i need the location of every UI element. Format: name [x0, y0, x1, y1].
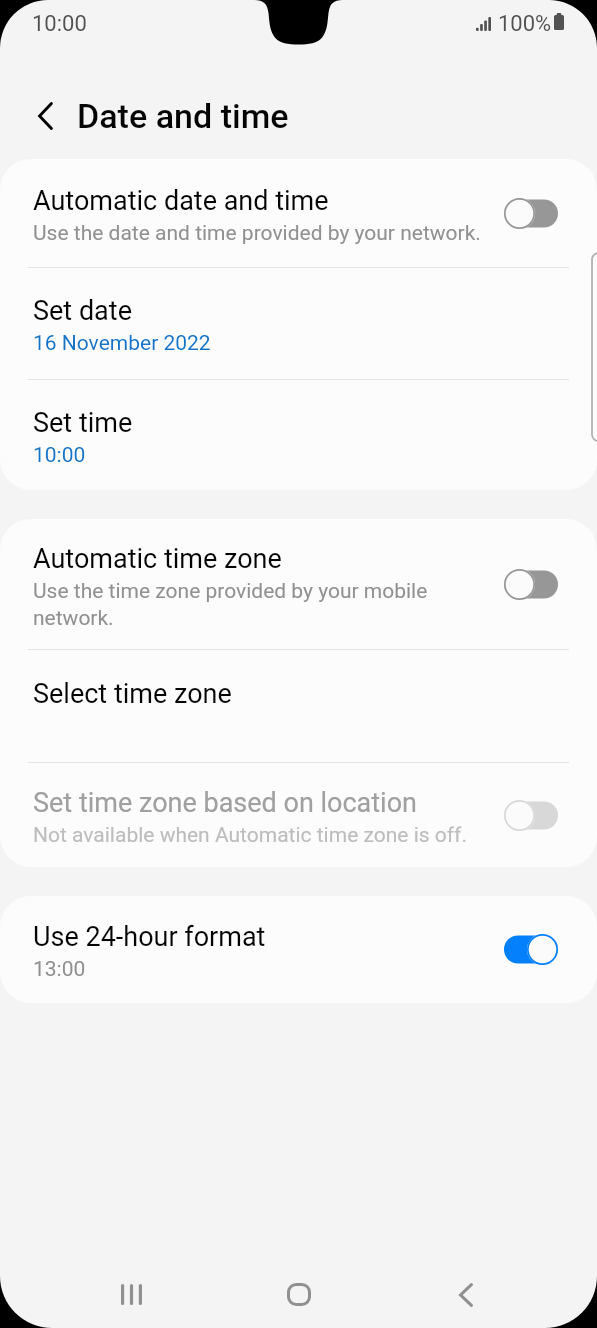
staticText: Automatic date and time: [33, 185, 329, 217]
staticText: Select time zone: [33, 678, 232, 710]
button[interactable]: On: [504, 934, 558, 965]
staticText: Automatic time zone: [33, 543, 282, 575]
staticText: Set date: [33, 295, 132, 327]
staticText: Date and time: [77, 96, 289, 136]
staticText: 100%: [498, 11, 552, 37]
button[interactable]: Use 24-hour format: [0, 896, 597, 1003]
staticText: 10:00: [33, 443, 86, 468]
staticText: Set time zone based on location: [33, 787, 417, 819]
button[interactable]: Off: [504, 569, 558, 600]
staticText: Not available when Automatic time zone i…: [33, 823, 467, 848]
button[interactable]: Home: [215, 1261, 382, 1328]
button[interactable]: Off: [504, 800, 558, 831]
button[interactable]: Recent apps: [48, 1261, 215, 1328]
staticText: Use the date and time provided by your n…: [33, 221, 481, 246]
button[interactable]: Automatic date and time: [0, 159, 597, 267]
button[interactable]: Set time: [0, 380, 597, 490]
staticText: 10:00: [32, 11, 87, 37]
staticText: Use 24-hour format: [33, 921, 266, 953]
button[interactable]: Off: [504, 198, 558, 229]
button[interactable]: Set date: [0, 268, 597, 379]
staticText: Use the time zone provided by your mobil…: [33, 579, 492, 630]
button[interactable]: Set time zone based on location: [0, 763, 597, 867]
button[interactable]: Select time zone: [0, 650, 597, 762]
button[interactable]: Navigate up: [23, 94, 67, 138]
button[interactable]: Automatic time zone: [0, 519, 597, 649]
button[interactable]: Back: [382, 1261, 549, 1328]
staticText: 13:00: [33, 957, 86, 982]
staticText: 16 November 2022: [33, 331, 211, 356]
staticText: Set time: [33, 407, 133, 439]
